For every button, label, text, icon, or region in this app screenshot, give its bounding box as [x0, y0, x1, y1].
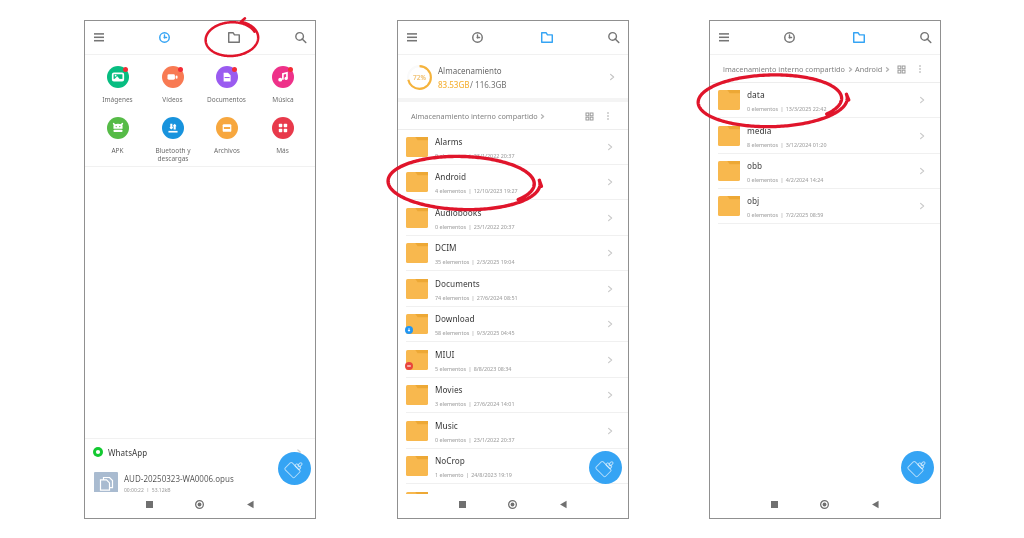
staticText: 4 elementos | 12/10/2023 19:27	[435, 187, 518, 194]
staticText: Música	[272, 95, 294, 104]
staticText: Almacenamiento interno compartido	[411, 111, 538, 121]
staticText: Download	[435, 313, 475, 324]
button[interactable]: Música	[255, 66, 310, 106]
button[interactable]: obj	[709, 188, 941, 224]
staticText: 8 elementos | 3/12/2024 01:20	[747, 141, 827, 148]
button[interactable]: Files	[537, 20, 556, 55]
button[interactable]: Files	[224, 20, 243, 55]
button[interactable]: Android	[397, 164, 629, 200]
button[interactable]: Movies	[397, 377, 629, 413]
button[interactable]: lmacenamiento interno compartido	[723, 64, 854, 74]
button[interactable]: Search	[291, 20, 310, 55]
staticText: 35 elementos | 2/3/2025 19:04	[435, 258, 515, 265]
staticText: 0 elementos | 4/2/2024 14:24	[747, 176, 824, 183]
button[interactable]: obb	[709, 153, 941, 189]
staticText: Documentos	[207, 95, 246, 104]
button[interactable]: Files	[849, 20, 868, 55]
staticText: AUD-20250323-WA0006.opus	[124, 473, 234, 484]
staticText: WhatsApp	[108, 447, 148, 458]
staticText: Imágenes	[102, 95, 133, 104]
button[interactable]: DCIM	[397, 235, 629, 271]
button[interactable]: Almacenamiento interno compartido	[411, 111, 546, 121]
button[interactable]: Download	[397, 306, 629, 342]
button[interactable]: Back	[551, 487, 576, 519]
button[interactable]: Clean up	[589, 451, 622, 484]
button[interactable]: Documentos	[199, 66, 254, 106]
staticText: 0 elementos | 13/3/2025 22:42	[747, 105, 827, 112]
staticText: Documents	[435, 278, 480, 289]
staticText: 74 elementos | 27/6/2024 08:51	[435, 294, 518, 301]
button[interactable]: Clean up	[901, 451, 934, 484]
staticText: 72%	[413, 73, 426, 82]
staticText: APK	[111, 146, 124, 155]
button[interactable]: Recent files	[468, 20, 487, 55]
button[interactable]: Recent apps	[762, 487, 787, 519]
button[interactable]: data	[709, 82, 941, 118]
staticText: Music	[435, 420, 458, 431]
button[interactable]: Search	[604, 20, 623, 55]
button[interactable]: Documents	[397, 271, 629, 307]
button[interactable]: Recent files	[155, 20, 174, 55]
button[interactable]: Back	[238, 487, 263, 519]
staticText: Android	[855, 64, 883, 74]
staticText: 0 elementos | 7/2/2025 08:59	[747, 211, 824, 218]
button[interactable]: More options	[600, 108, 616, 124]
button[interactable]: Android	[855, 64, 891, 74]
button[interactable]: Recent apps	[137, 487, 162, 519]
staticText: Más	[276, 146, 289, 155]
staticText: 3 elementos | 27/6/2024 14:01	[435, 400, 515, 407]
button[interactable]: WhatsApp	[84, 440, 316, 464]
button[interactable]: Home	[500, 487, 525, 519]
button[interactable]: Recent files	[780, 20, 799, 55]
staticText: 0 elementos | 23/1/2022 20:37	[435, 152, 515, 159]
staticText: obb	[747, 160, 763, 171]
staticText: media	[747, 125, 772, 136]
button[interactable]: Audiobooks	[397, 200, 629, 236]
staticText: 83.53GB	[438, 79, 470, 90]
staticText: DCIM	[435, 242, 457, 253]
staticText: 5 elementos | 8/8/2023 08:34	[435, 365, 512, 372]
button[interactable]: 72%	[397, 55, 629, 99]
button[interactable]: Search	[916, 20, 935, 55]
button[interactable]: Imágenes	[90, 66, 145, 106]
staticText: Android	[435, 171, 467, 182]
button[interactable]: Clean up	[278, 452, 311, 485]
staticText: NoCrop	[435, 455, 465, 466]
button[interactable]: APK	[90, 117, 145, 157]
staticText: 0 elementos | 23/1/2022 20:37	[435, 436, 515, 443]
button[interactable]: Bluetooth y descargas	[145, 117, 200, 157]
button[interactable]: Archivos	[199, 117, 254, 157]
button[interactable]: Alarms	[397, 129, 629, 165]
button[interactable]: media	[709, 118, 941, 154]
staticText: 00:00:22 | 53.12kB	[124, 487, 171, 494]
staticText: Bluetooth y descargas	[155, 146, 191, 163]
button[interactable]: Grid view	[581, 108, 597, 124]
staticText: lmacenamiento interno compartido	[723, 64, 846, 74]
button[interactable]: MIUI	[397, 342, 629, 378]
staticText: / 116.3GB	[470, 79, 507, 90]
staticText: Almacenamiento	[438, 65, 502, 76]
button[interactable]: AUD-20250323-WA0006.opus	[84, 471, 316, 495]
staticText: Vídeos	[162, 95, 183, 104]
button[interactable]: Menu	[89, 20, 108, 55]
button[interactable]: NoCrop	[397, 448, 629, 484]
button[interactable]: Music	[397, 413, 629, 449]
staticText: MIUI	[435, 349, 455, 360]
button[interactable]: Grid view	[893, 61, 909, 77]
button[interactable]: Vídeos	[145, 66, 200, 106]
staticText: 0 elementos | 23/1/2022 20:37	[435, 223, 515, 230]
staticText: obj	[747, 195, 760, 206]
staticText: Archivos	[214, 146, 240, 155]
button[interactable]: Menu	[402, 20, 421, 55]
button[interactable]: Menu	[714, 20, 733, 55]
button[interactable]: Más	[255, 117, 310, 157]
button[interactable]: Recent apps	[450, 487, 475, 519]
staticText: 1 elemento | 24/8/2023 19:19	[435, 471, 512, 478]
button[interactable]: More options	[912, 61, 928, 77]
button[interactable]: Back	[863, 487, 888, 519]
button[interactable]: Home	[187, 487, 212, 519]
staticText: Audiobooks	[435, 207, 482, 218]
button[interactable]: Home	[812, 487, 837, 519]
staticText: 58 elementos | 9/3/2025 04:45	[435, 329, 515, 336]
staticText: data	[747, 89, 765, 100]
